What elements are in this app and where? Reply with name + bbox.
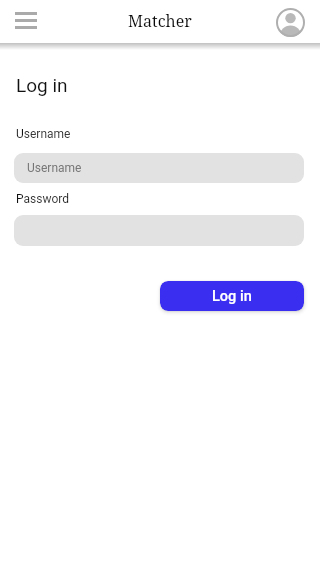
button[interactable] xyxy=(275,7,305,37)
button[interactable]: Username xyxy=(14,153,304,183)
staticText: Password xyxy=(16,192,70,206)
staticText: Log in xyxy=(212,288,252,305)
button[interactable]: Log in xyxy=(160,281,304,311)
staticText: Username xyxy=(27,161,82,175)
staticText: Username xyxy=(16,127,71,141)
staticText: Log in xyxy=(16,74,68,96)
button[interactable] xyxy=(9,3,43,37)
staticText: Matcher xyxy=(128,10,192,32)
